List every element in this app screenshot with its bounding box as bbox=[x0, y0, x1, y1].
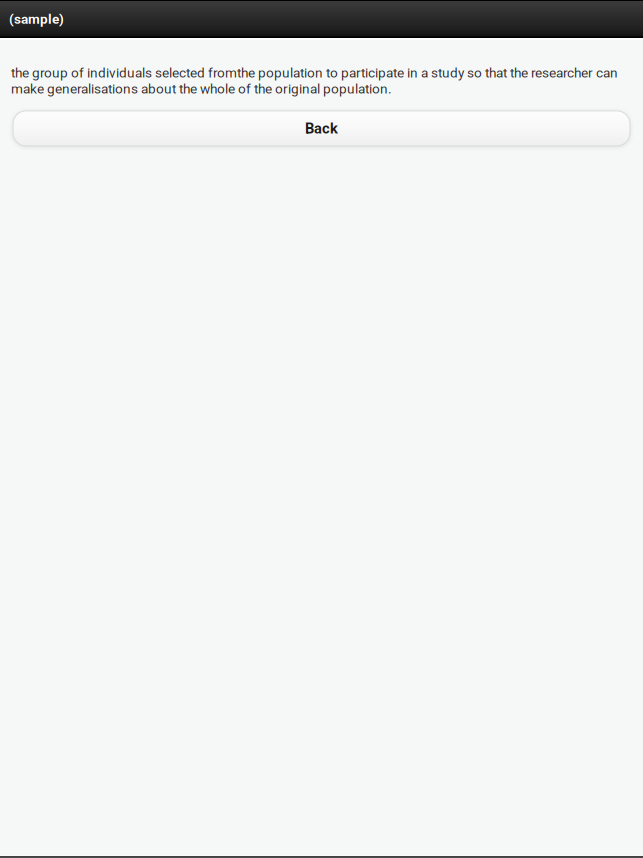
staticText: the group of individuals selected fromth… bbox=[11, 65, 618, 97]
button[interactable]: Back bbox=[13, 111, 630, 146]
staticText: (sample) bbox=[9, 11, 64, 27]
staticText: Back bbox=[305, 120, 338, 137]
